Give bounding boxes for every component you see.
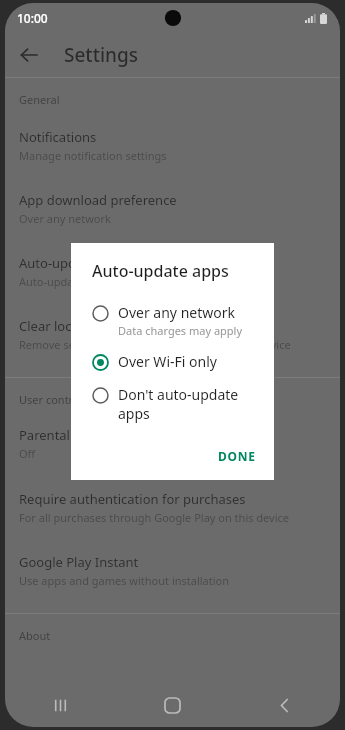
button[interactable]: Recents bbox=[5, 683, 116, 727]
staticText: Remove searches you have performed on th… bbox=[19, 337, 291, 352]
button[interactable]: Auto-update apps bbox=[5, 245, 340, 298]
button[interactable]: Back bbox=[228, 683, 340, 727]
button[interactable]: Don't auto-update apps bbox=[71, 378, 274, 430]
staticText: Data charges may apply bbox=[118, 323, 243, 338]
staticText: Don't auto-update apps bbox=[118, 385, 253, 423]
button[interactable]: Home bbox=[116, 683, 228, 727]
button[interactable]: Back bbox=[11, 37, 47, 73]
staticText: Auto-update apps bbox=[19, 254, 129, 272]
staticText: Settings bbox=[64, 42, 138, 68]
staticText: Off bbox=[19, 446, 36, 461]
staticText: Use apps and games without installation bbox=[19, 573, 230, 588]
staticText: Require authentication for purchases bbox=[19, 490, 246, 508]
button[interactable]: App download preference bbox=[5, 182, 340, 235]
button[interactable]: Parental controls bbox=[5, 417, 340, 470]
staticText: Notifications bbox=[19, 128, 97, 146]
staticText: Auto-update apps over Wi-Fi only bbox=[19, 274, 190, 289]
staticText: For all purchases through Google Play on… bbox=[19, 510, 290, 525]
staticText: Manage notification settings bbox=[19, 148, 167, 163]
staticText: Over any network bbox=[118, 303, 235, 322]
staticText: Auto-update apps bbox=[92, 260, 229, 282]
button[interactable]: Over any network bbox=[71, 296, 274, 345]
staticText: Google Play Instant bbox=[19, 553, 139, 571]
button[interactable]: Require authentication for purchases bbox=[5, 481, 340, 534]
staticText: DONE bbox=[218, 448, 256, 464]
button[interactable]: Over Wi-Fi only bbox=[71, 345, 274, 378]
staticText: Clear local search history bbox=[19, 317, 172, 335]
staticText: App download preference bbox=[19, 191, 177, 209]
button[interactable]: Clear local search history bbox=[5, 308, 340, 361]
staticText: About bbox=[19, 628, 51, 643]
button[interactable]: DONE bbox=[208, 442, 266, 470]
staticText: Parental controls bbox=[19, 426, 123, 444]
staticText: General bbox=[19, 92, 60, 107]
staticText: Over Wi-Fi only bbox=[118, 352, 217, 371]
button[interactable]: Google Play Instant bbox=[5, 544, 340, 597]
staticText: 10:00 bbox=[17, 10, 48, 26]
staticText: Over any network bbox=[19, 211, 111, 226]
button[interactable]: Notifications bbox=[5, 119, 340, 172]
staticText: User controls bbox=[19, 392, 88, 407]
